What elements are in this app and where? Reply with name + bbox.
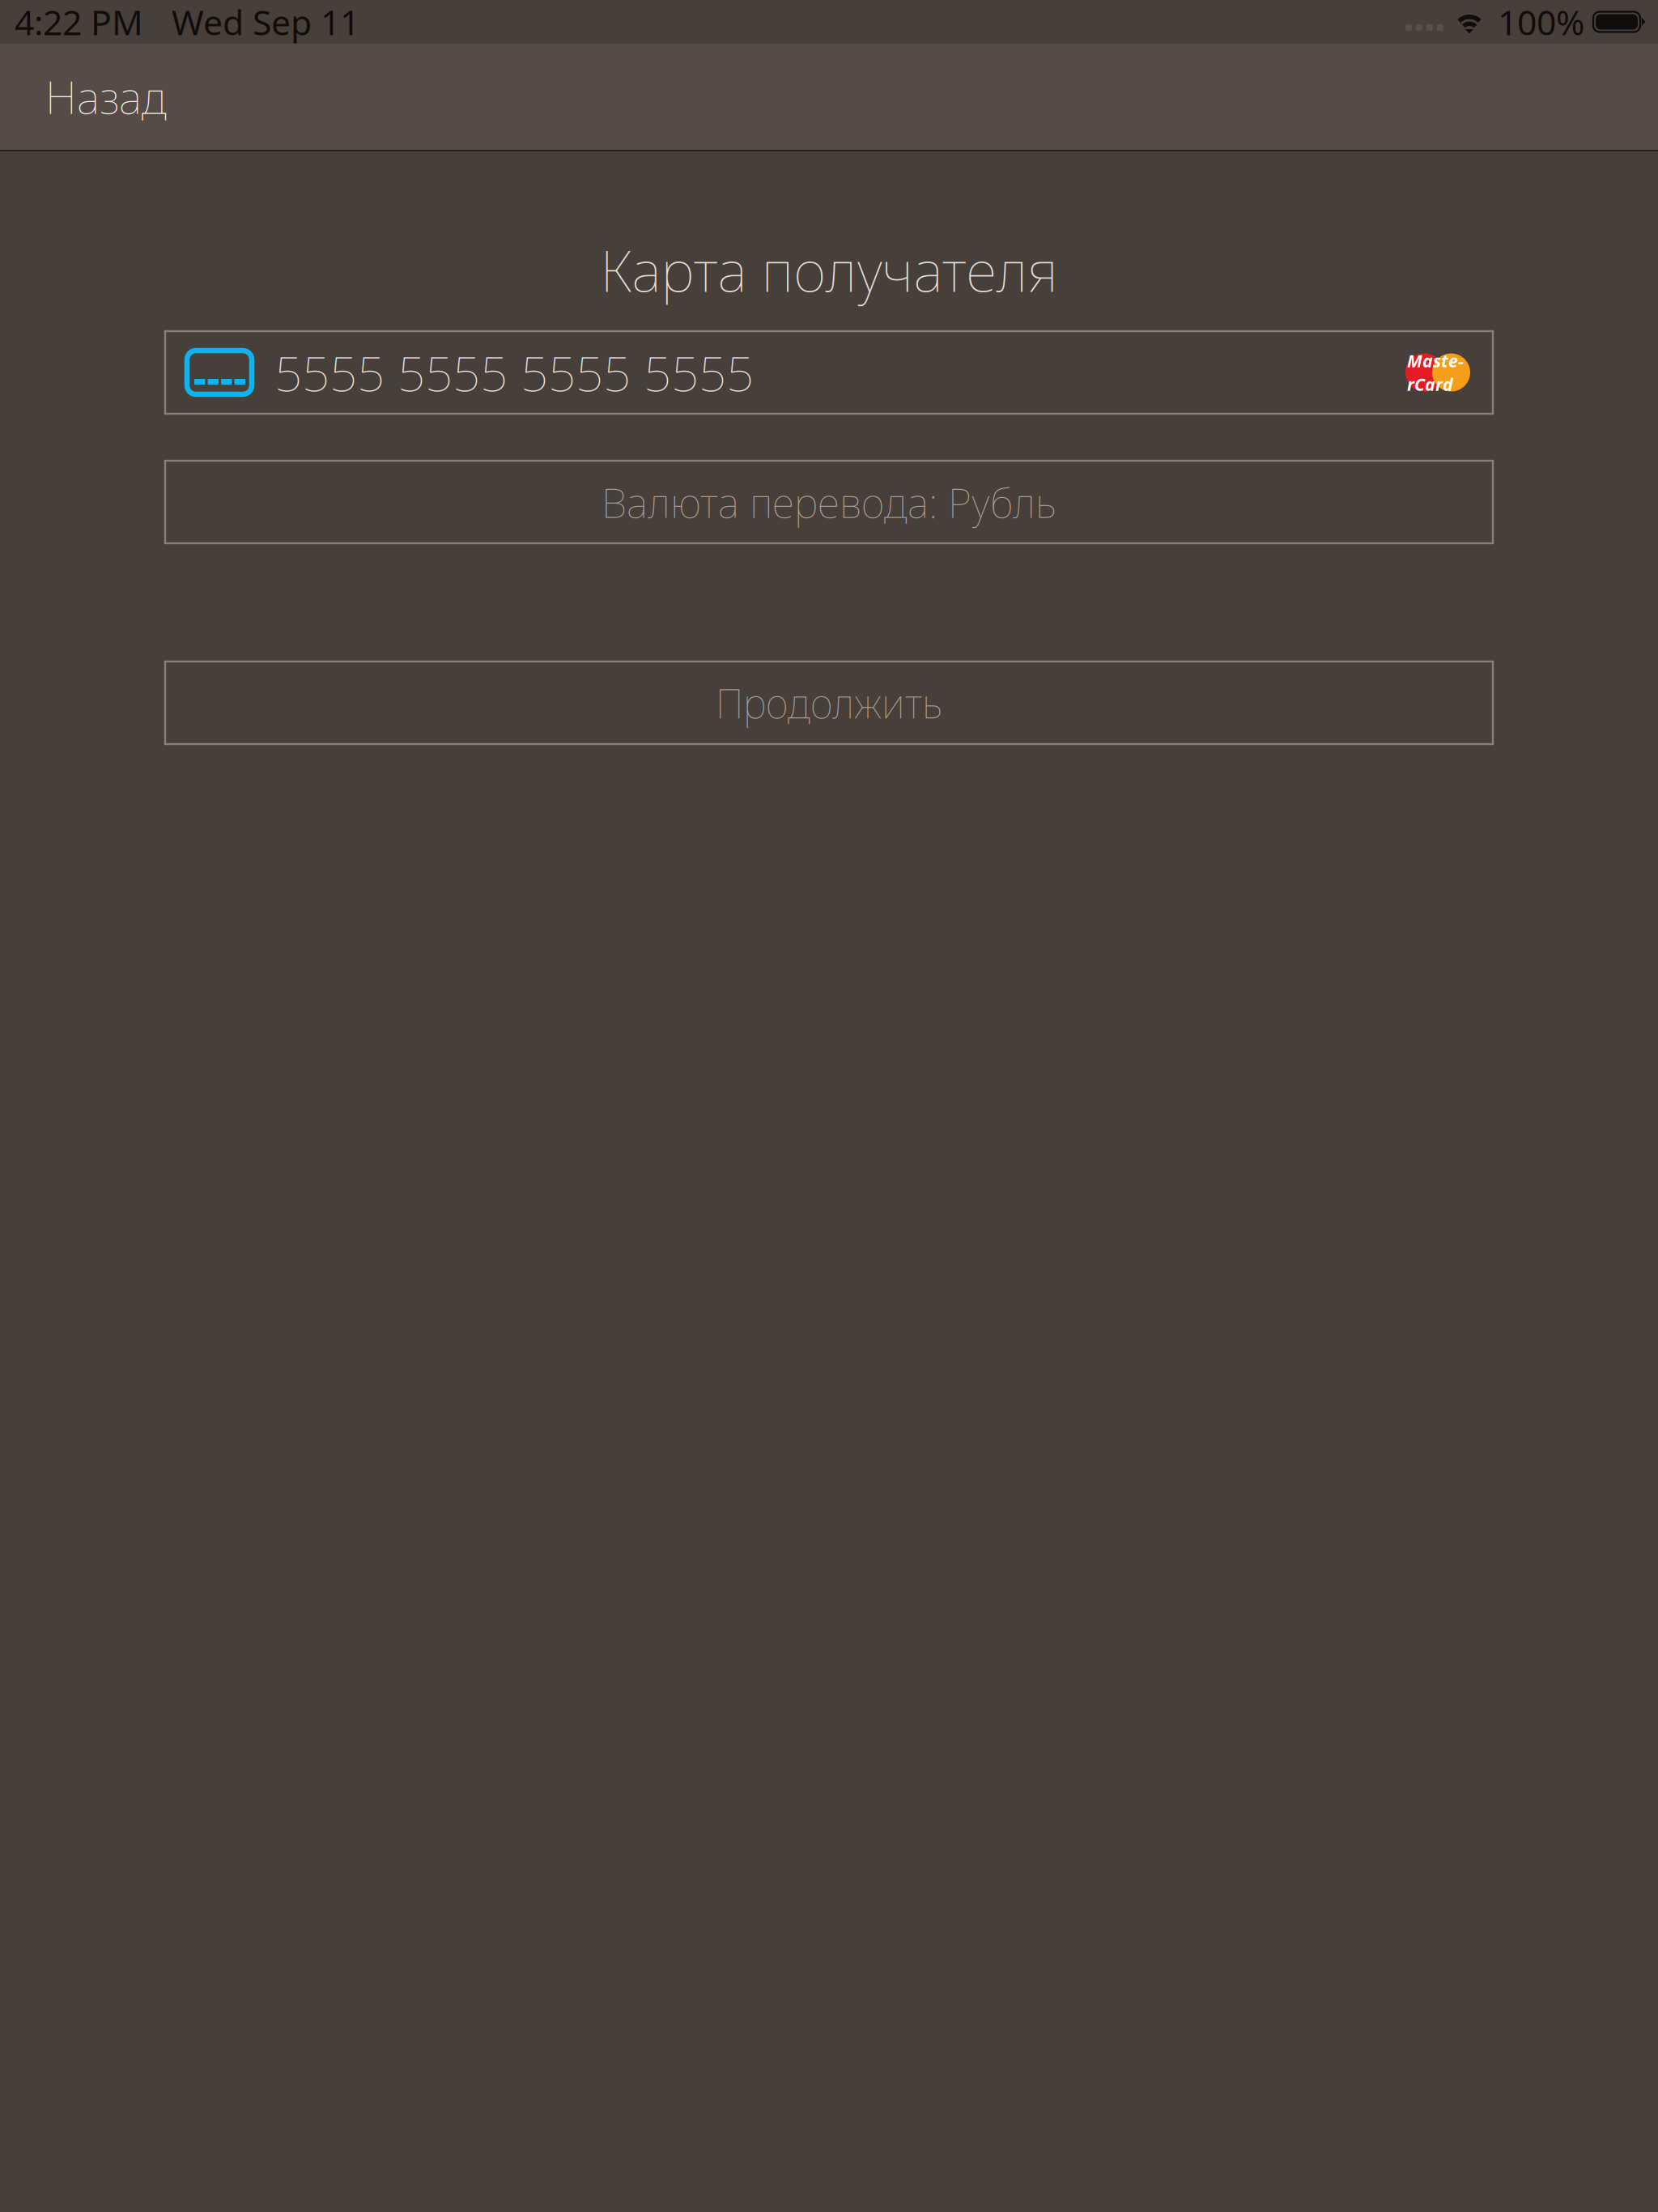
button[interactable]: Назад [0, 49, 189, 145]
staticText: MasterCard [1407, 349, 1464, 396]
staticText: 100% [1498, 0, 1584, 45]
staticText: Назад [45, 67, 167, 127]
staticText: Валюта перевода: Рубль [602, 474, 1056, 530]
button[interactable]: Валюта перевода: Рубль [165, 461, 1493, 543]
button[interactable]: Продолжить [165, 661, 1493, 744]
staticText: 4:22 PM [15, 0, 143, 45]
staticText: Wed Sep 11 [172, 0, 359, 45]
staticText: Продолжить [716, 676, 942, 730]
staticText: 5555 5555 5555 5555 [274, 339, 754, 405]
button[interactable]: 5555 5555 5555 5555 [165, 331, 1493, 414]
staticText: Карта получателя [600, 231, 1058, 309]
